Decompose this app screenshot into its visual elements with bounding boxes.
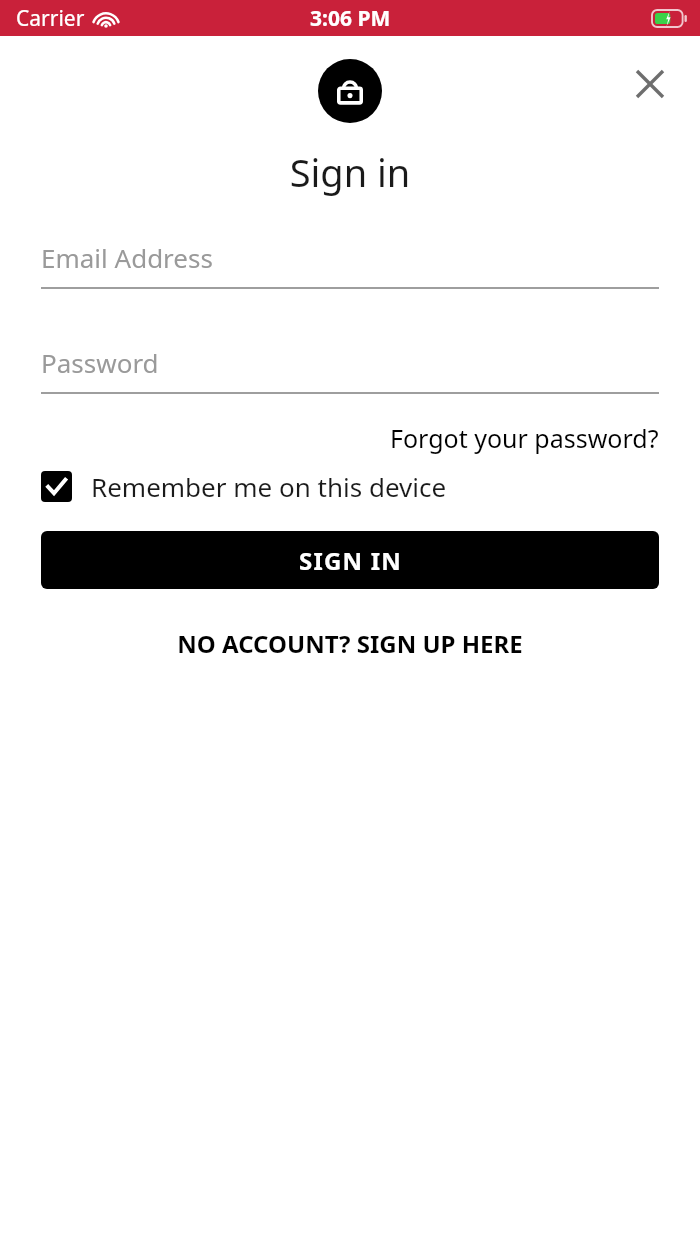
button[interactable]: NO ACCOUNT? SIGN UP HERE [0, 619, 700, 668]
staticText: Forgot your password? [390, 421, 659, 455]
staticText: Sign in [0, 146, 700, 198]
button[interactable]: Email Address [41, 240, 659, 289]
staticText: Remember me on this device [91, 469, 447, 504]
staticText: NO ACCOUNT? SIGN UP HERE [177, 627, 523, 660]
button[interactable]: Remember me on this device [41, 469, 659, 504]
staticText: Email Address [41, 240, 213, 275]
button[interactable]: Forgot your password? [390, 421, 659, 455]
button[interactable]: Secure sign in [318, 59, 382, 123]
staticText: Password [41, 345, 159, 380]
staticText: 3:06 PM [310, 4, 391, 33]
button[interactable]: SIGN IN [41, 531, 659, 589]
button[interactable]: Close [628, 62, 672, 106]
staticText: SIGN IN [299, 544, 402, 577]
button[interactable]: Password [41, 345, 659, 394]
staticText: Carrier [16, 4, 85, 33]
